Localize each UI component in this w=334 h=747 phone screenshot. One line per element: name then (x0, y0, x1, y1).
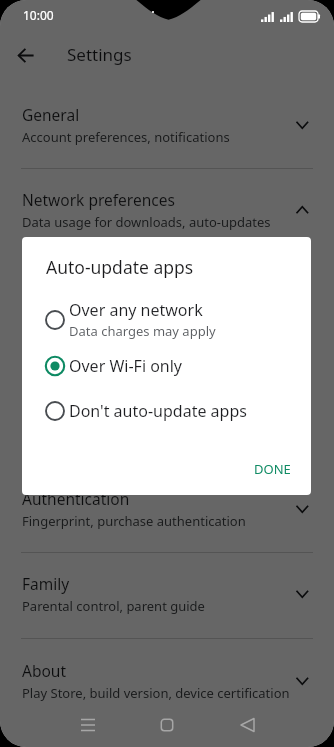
button[interactable]: Network preferences (0, 163, 334, 248)
button[interactable]: Family (0, 547, 334, 632)
button[interactable]: About (0, 634, 334, 719)
staticText: 10:00 (23, 7, 54, 23)
staticText: Authentication (22, 488, 130, 509)
staticText: Data usage for downloads, auto-updates (22, 213, 271, 231)
button[interactable]: DONE (244, 450, 281, 468)
staticText: Network preferences (22, 189, 175, 210)
staticText: Play Store, build version, device certif… (22, 684, 290, 702)
button[interactable]: Over Wi-Fi only (22, 344, 311, 388)
staticText: About (22, 660, 66, 681)
staticText: Don't auto-update apps (69, 400, 247, 422)
staticText: Over any network (69, 299, 203, 321)
staticText: Family (22, 573, 70, 594)
staticText: Data charges may apply (69, 322, 216, 340)
button[interactable]: General (0, 78, 334, 163)
button[interactable]: Back (230, 707, 266, 743)
staticText: Auto-update apps (46, 255, 194, 279)
button[interactable]: Authentication (0, 462, 334, 547)
staticText: Settings (67, 43, 132, 66)
button[interactable]: Back (8, 37, 44, 73)
staticText: DONE (254, 460, 291, 478)
staticText: Parental control, parent guide (22, 597, 205, 615)
staticText: General (22, 104, 80, 125)
staticText: Over Wi-Fi only (69, 355, 183, 377)
button[interactable]: Home (149, 707, 185, 743)
staticText: Fingerprint, purchase authentication (22, 512, 246, 530)
button[interactable]: Recent apps (70, 707, 106, 743)
button[interactable]: Don't auto-update apps (22, 389, 311, 433)
button[interactable]: Over any network (22, 298, 311, 342)
staticText: Account preferences, notifications (22, 128, 230, 146)
